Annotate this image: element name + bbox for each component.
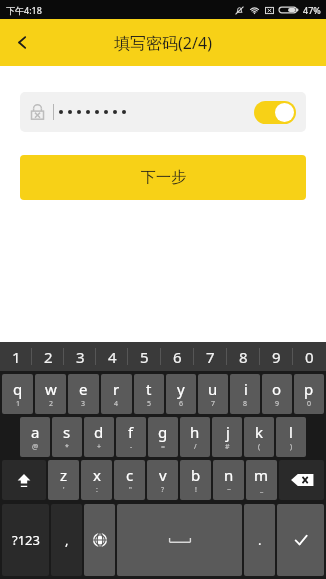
staticText: ? bbox=[161, 485, 165, 495]
staticText: c bbox=[126, 465, 134, 485]
staticText: d bbox=[94, 422, 104, 442]
staticText: h bbox=[190, 422, 200, 442]
button[interactable]: 2 bbox=[32, 342, 64, 371]
staticText: 4 bbox=[108, 347, 117, 367]
button[interactable]: a bbox=[20, 417, 50, 457]
staticText: 8 bbox=[239, 347, 248, 367]
staticText: _ bbox=[260, 485, 264, 495]
button[interactable]: e bbox=[68, 374, 99, 414]
staticText: o bbox=[272, 379, 282, 399]
button[interactable]: o bbox=[262, 374, 292, 414]
staticText: / bbox=[194, 442, 197, 452]
staticText: ) bbox=[290, 442, 293, 452]
button[interactable]: Backspace bbox=[279, 460, 324, 500]
button[interactable]: 3 bbox=[64, 342, 96, 371]
button[interactable]: m bbox=[246, 460, 277, 500]
button[interactable]: c bbox=[114, 460, 145, 500]
staticText: 5 bbox=[140, 347, 149, 367]
button[interactable]: g bbox=[148, 417, 178, 457]
button[interactable]: l bbox=[276, 417, 306, 457]
staticText: g bbox=[158, 422, 168, 442]
staticText: t bbox=[146, 379, 152, 399]
button[interactable]: n bbox=[213, 460, 244, 500]
staticText: @ bbox=[32, 442, 39, 452]
button[interactable]: b bbox=[180, 460, 211, 500]
staticText: s bbox=[63, 422, 71, 442]
staticText: + bbox=[97, 442, 102, 452]
staticText: ?123 bbox=[12, 531, 40, 549]
staticText: * bbox=[65, 442, 69, 452]
button[interactable]: y bbox=[166, 374, 196, 414]
staticText: l bbox=[289, 422, 293, 442]
staticText: m bbox=[254, 465, 269, 485]
staticText: " bbox=[129, 485, 132, 495]
button[interactable]: r bbox=[101, 374, 132, 414]
button[interactable]: Space bbox=[117, 504, 242, 576]
staticText: n bbox=[224, 465, 234, 485]
button[interactable]: z bbox=[48, 460, 79, 500]
button[interactable]: Show password bbox=[20, 92, 306, 132]
button[interactable]: j bbox=[212, 417, 242, 457]
button[interactable]: . bbox=[244, 504, 275, 576]
staticText: j bbox=[226, 422, 230, 442]
button[interactable]: t bbox=[134, 374, 164, 414]
staticText: 7 bbox=[206, 347, 215, 367]
staticText: : bbox=[96, 485, 98, 495]
button[interactable]: 1 bbox=[0, 342, 32, 371]
button[interactable]: p bbox=[294, 374, 324, 414]
button[interactable]: , bbox=[51, 504, 82, 576]
staticText: . bbox=[258, 531, 262, 549]
staticText: 7 bbox=[211, 399, 216, 409]
button[interactable]: i bbox=[230, 374, 260, 414]
button[interactable]: Enter bbox=[277, 504, 324, 576]
button[interactable]: 5 bbox=[128, 342, 161, 371]
button[interactable]: Back bbox=[0, 19, 44, 66]
staticText: 填写密码(2/4) bbox=[114, 32, 212, 54]
button[interactable]: Shift bbox=[2, 460, 46, 500]
staticText: ! bbox=[195, 485, 197, 495]
staticText: 5 bbox=[147, 399, 152, 409]
staticText: = bbox=[161, 442, 166, 452]
button[interactable]: 4 bbox=[96, 342, 128, 371]
staticText: p bbox=[304, 379, 314, 399]
staticText: e bbox=[79, 379, 88, 399]
staticText: k bbox=[255, 422, 264, 442]
staticText: y bbox=[177, 379, 185, 399]
staticText: u bbox=[208, 379, 218, 399]
button[interactable]: Change language bbox=[84, 504, 115, 576]
staticText: 2 bbox=[49, 399, 54, 409]
staticText: 0 bbox=[305, 347, 314, 367]
button[interactable]: k bbox=[244, 417, 274, 457]
button[interactable]: v bbox=[147, 460, 178, 500]
staticText: w bbox=[45, 379, 57, 399]
staticText: i bbox=[244, 379, 248, 399]
button[interactable]: ?123 bbox=[2, 504, 49, 576]
button[interactable]: f bbox=[116, 417, 146, 457]
button[interactable]: w bbox=[35, 374, 66, 414]
staticText: 8 bbox=[243, 399, 248, 409]
button[interactable]: s bbox=[52, 417, 82, 457]
button[interactable]: 下一步 bbox=[20, 155, 306, 200]
staticText: 下午4:18 bbox=[6, 4, 42, 16]
staticText: x bbox=[93, 465, 101, 485]
staticText: 3 bbox=[81, 399, 86, 409]
button[interactable]: h bbox=[180, 417, 210, 457]
button[interactable]: q bbox=[2, 374, 33, 414]
button[interactable]: u bbox=[198, 374, 228, 414]
button[interactable]: 7 bbox=[194, 342, 227, 371]
staticText: 2 bbox=[44, 347, 53, 367]
button[interactable]: 6 bbox=[161, 342, 194, 371]
button[interactable]: Show password bbox=[254, 101, 296, 124]
button[interactable]: 9 bbox=[260, 342, 293, 371]
staticText: 3 bbox=[76, 347, 85, 367]
staticText: b bbox=[191, 465, 201, 485]
button[interactable]: d bbox=[84, 417, 114, 457]
button[interactable]: x bbox=[81, 460, 112, 500]
staticText: q bbox=[13, 379, 23, 399]
button[interactable]: 0 bbox=[293, 342, 326, 371]
button[interactable]: 8 bbox=[227, 342, 260, 371]
staticText: # bbox=[225, 442, 230, 452]
staticText: r bbox=[113, 379, 120, 399]
staticText: 6 bbox=[179, 399, 184, 409]
staticText: - bbox=[130, 442, 133, 452]
